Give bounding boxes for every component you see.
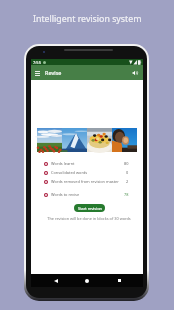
staticText: 80 [124, 161, 129, 166]
staticText: The revision will be done in blocks of 3… [33, 216, 145, 221]
staticText: Intelligent revision system [33, 13, 142, 25]
button[interactable]: Open navigation menu [34, 68, 41, 78]
staticText: 78 [124, 192, 129, 197]
button[interactable]: Words to revise [31, 190, 143, 199]
staticText: Words removed from revision master [51, 179, 119, 184]
staticText: Consolidated words [51, 170, 88, 175]
staticText: Words to revise [51, 192, 80, 197]
button[interactable]: Recent apps [112, 274, 126, 287]
staticText: 0 [126, 170, 129, 175]
button[interactable]: Sound [130, 68, 140, 78]
button[interactable]: Home [80, 274, 94, 287]
staticText: Words learnt [51, 161, 75, 166]
button[interactable]: Words removed from revision master [31, 177, 143, 186]
button[interactable]: Start revision [74, 204, 105, 212]
staticText: 2 [126, 179, 129, 184]
button[interactable]: Words learnt [31, 159, 143, 168]
button[interactable]: Consolidated words [31, 168, 143, 177]
staticText: Start revision [78, 206, 102, 211]
staticText: 7:55 [33, 60, 41, 65]
staticText: Revise [45, 69, 62, 76]
button[interactable]: Back [49, 274, 63, 287]
